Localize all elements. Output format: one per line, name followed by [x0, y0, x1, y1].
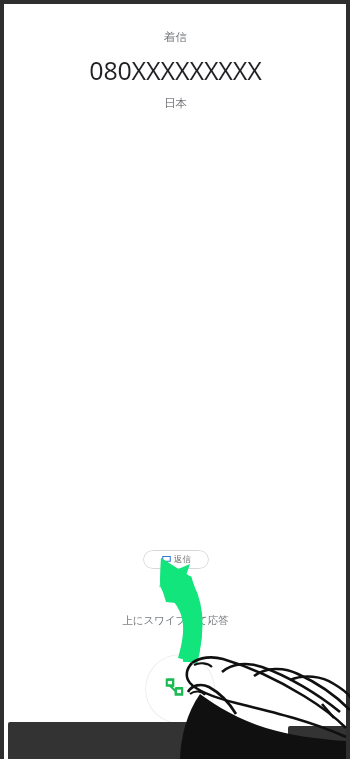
staticText: 上にスワイプして応答 [122, 614, 229, 627]
staticText: 返信 [174, 554, 191, 565]
button[interactable]: メッセージで返信 [143, 550, 209, 569]
staticText: 着信 [164, 30, 187, 44]
button[interactable]: 応答 [145, 654, 215, 724]
staticText: 080XXXXXXXXX [89, 53, 262, 87]
staticText: 日本 [164, 96, 187, 110]
